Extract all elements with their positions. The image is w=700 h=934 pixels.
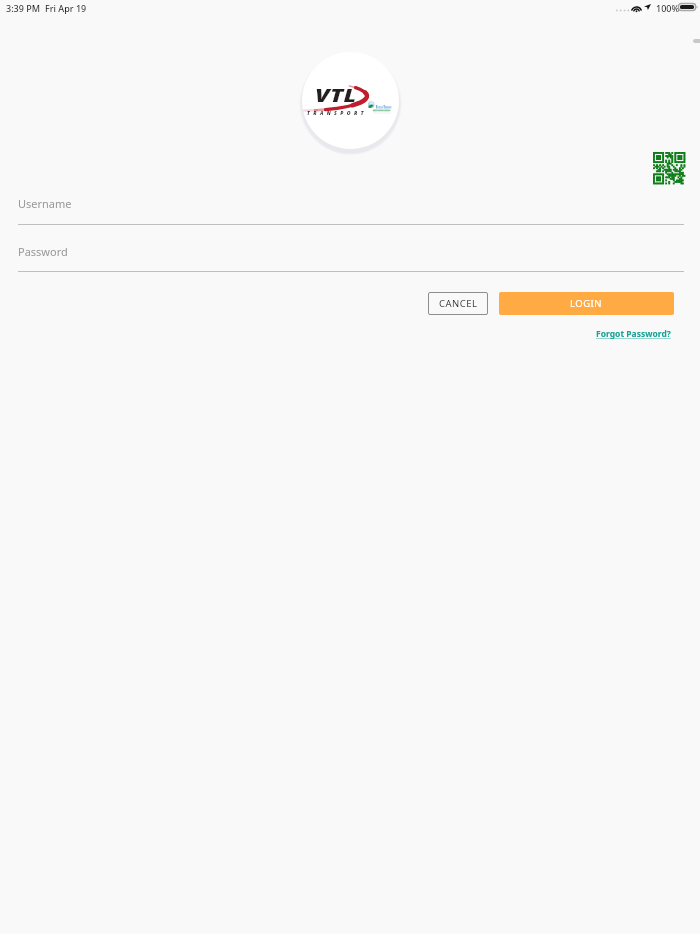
- staticText: Forgot Password?: [596, 328, 671, 340]
- button[interactable]: CANCEL: [428, 292, 488, 315]
- staticText: Password: [18, 244, 68, 259]
- staticText: 100%: [656, 2, 680, 14]
- staticText: TRANSPORT: [307, 110, 367, 116]
- staticText: Fri Apr 19: [45, 2, 87, 14]
- staticText: CANCEL: [439, 297, 478, 310]
- other: QR code: [653, 152, 685, 184]
- staticText: LOGIN: [570, 297, 603, 310]
- button[interactable]: LOGIN: [499, 292, 674, 315]
- staticText: Username: [18, 196, 72, 211]
- button[interactable]: Forgot Password?: [596, 328, 671, 340]
- staticText: VTL: [315, 83, 358, 108]
- staticText: 3:39 PM: [6, 2, 40, 14]
